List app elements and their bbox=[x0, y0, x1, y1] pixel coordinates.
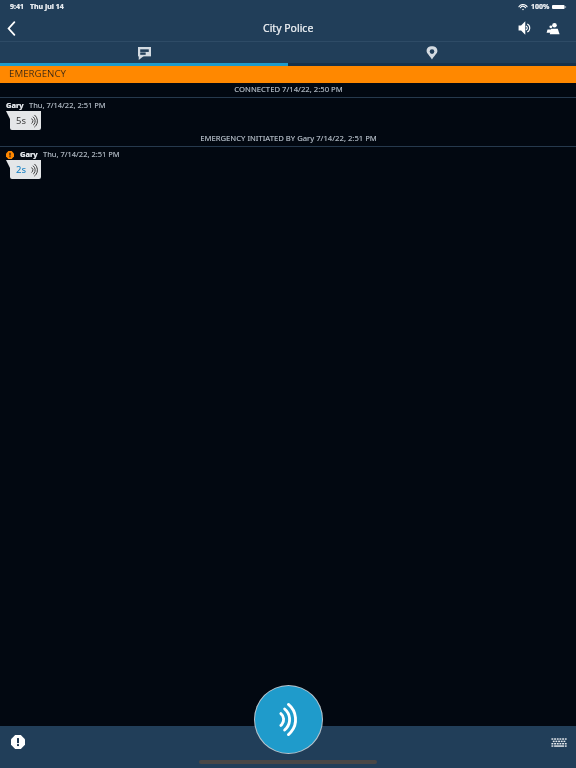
staticText: Thu, 7/14/22, 2:51 PM bbox=[43, 149, 120, 159]
staticText: 100% bbox=[531, 2, 550, 12]
staticText: EMERGENCY INITIATED BY Gary 7/14/22, 2:5… bbox=[200, 133, 377, 143]
staticText: EMERGENCY bbox=[9, 67, 66, 80]
button[interactable]: Participants bbox=[541, 14, 565, 42]
staticText: 9:41 bbox=[10, 2, 24, 12]
staticText: Thu Jul 14 bbox=[30, 2, 64, 12]
staticText: City Police bbox=[263, 21, 314, 35]
button[interactable]: EMERGENCY bbox=[0, 66, 576, 83]
button[interactable]: Push to talk bbox=[255, 686, 322, 753]
button[interactable]: Speaker bbox=[512, 14, 538, 42]
button[interactable]: Map tab bbox=[288, 42, 576, 66]
button[interactable]: Keyboard bbox=[551, 737, 567, 747]
button[interactable]: Emergency bbox=[11, 735, 25, 749]
button[interactable]: Chat tab bbox=[0, 42, 288, 66]
staticText: 5s bbox=[16, 114, 27, 127]
staticText: Gary bbox=[20, 149, 38, 159]
staticText: Thu, 7/14/22, 2:51 PM bbox=[29, 100, 106, 110]
staticText: CONNECTED 7/14/22, 2:50 PM bbox=[234, 84, 343, 94]
staticText: 2s bbox=[16, 163, 27, 176]
staticText: Gary bbox=[6, 100, 24, 110]
button[interactable]: 2s bbox=[6, 160, 41, 179]
button[interactable]: 5s bbox=[6, 111, 41, 130]
button[interactable]: Back bbox=[0, 14, 23, 42]
